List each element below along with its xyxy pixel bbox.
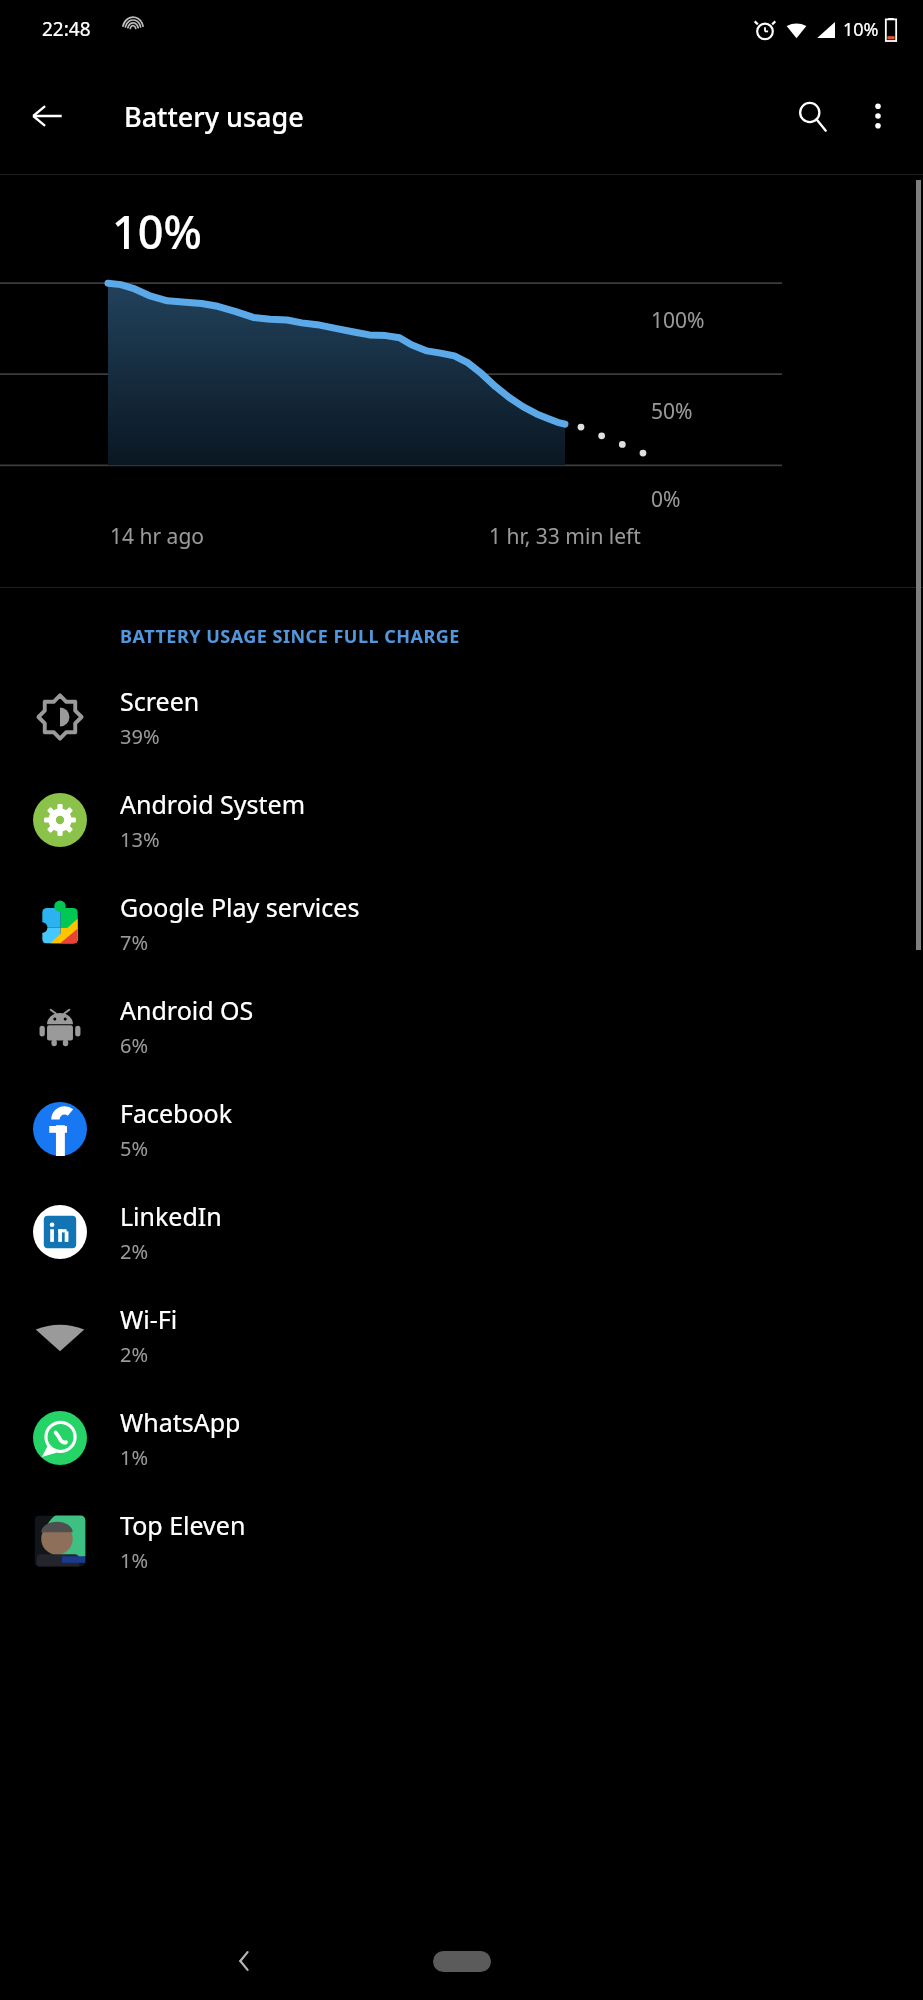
button[interactable]: WhatsApp xyxy=(0,1386,923,1489)
staticText: LinkedIn xyxy=(120,1199,222,1233)
staticText: WhatsApp xyxy=(120,1405,241,1439)
button[interactable]: Wi-Fi xyxy=(0,1283,923,1386)
staticText: 1% xyxy=(120,1547,149,1574)
staticText: 1% xyxy=(120,1444,149,1471)
staticText: Android System xyxy=(120,787,306,821)
staticText: 22:48 xyxy=(42,16,91,42)
button[interactable]: Back xyxy=(210,1926,280,1996)
staticText: Android OS xyxy=(120,993,254,1027)
staticText: 13% xyxy=(120,826,160,853)
staticText: 50% xyxy=(651,397,693,426)
staticText: 2% xyxy=(120,1341,149,1368)
staticText: 2% xyxy=(120,1238,149,1265)
staticText: 10% xyxy=(112,201,202,262)
staticText: 0% xyxy=(651,485,681,514)
staticText: Google Play services xyxy=(120,890,360,924)
button[interactable]: Home xyxy=(433,1951,491,1972)
staticText: Top Eleven xyxy=(120,1508,246,1542)
button[interactable]: Search xyxy=(779,83,845,149)
staticText: 14 hr ago xyxy=(110,522,204,551)
staticText: 39% xyxy=(120,723,160,750)
staticText: 5% xyxy=(120,1135,149,1162)
staticText: 1 hr, 33 min left xyxy=(489,522,641,551)
staticText: 7% xyxy=(120,929,149,956)
button[interactable]: LinkedIn xyxy=(0,1180,923,1283)
staticText: Battery usage xyxy=(124,98,304,135)
staticText: 10% xyxy=(843,17,879,42)
button[interactable]: More options xyxy=(845,83,911,149)
button[interactable]: Back xyxy=(14,83,80,149)
button[interactable]: Android OS xyxy=(0,974,923,1077)
button[interactable]: Android System xyxy=(0,768,923,871)
button[interactable]: Facebook xyxy=(0,1077,923,1180)
button[interactable]: Google Play services xyxy=(0,871,923,974)
staticText: BATTERY USAGE SINCE FULL CHARGE xyxy=(120,624,460,649)
staticText: 6% xyxy=(120,1032,149,1059)
staticText: Screen xyxy=(120,684,200,718)
staticText: Wi-Fi xyxy=(120,1302,178,1336)
staticText: Facebook xyxy=(120,1096,233,1130)
button[interactable]: Screen xyxy=(0,665,923,768)
staticText: 100% xyxy=(651,306,705,335)
button[interactable]: Top Eleven xyxy=(0,1489,923,1592)
